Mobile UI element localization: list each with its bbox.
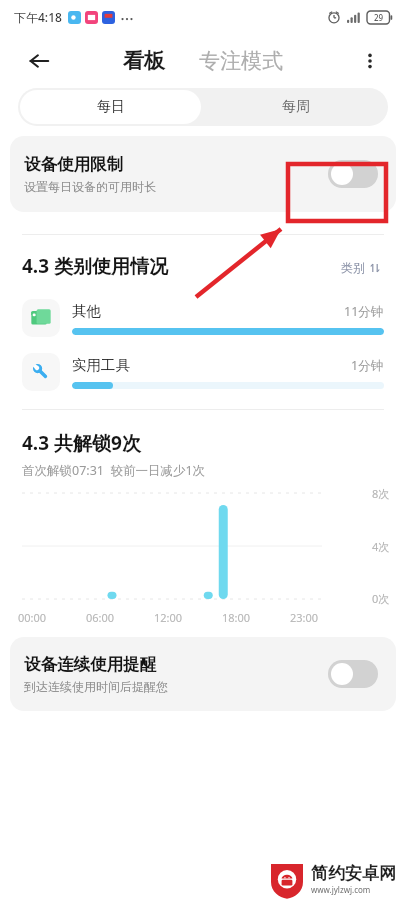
button[interactable]: 每周 [203,88,388,126]
staticText: 下午4:18 [14,9,62,25]
staticText: 23:00 [290,610,344,625]
button[interactable]: 开关 [328,160,378,188]
staticText: 12:00 [154,610,222,625]
staticText: 8次 [372,486,390,501]
staticText: 4次 [372,539,390,554]
staticText: 11分钟 [344,303,384,320]
staticText: 到达连续使用时间后提醒您 [24,679,168,694]
button[interactable]: 设备使用限制 [10,136,396,212]
button[interactable]: 其他 [0,295,406,341]
staticText: 专注模式 [199,48,283,74]
staticText: 29 [374,12,384,23]
button[interactable]: 返回 [18,40,60,82]
staticText: 每日 [97,98,125,116]
staticText: 06:00 [86,610,154,625]
staticText: 18:00 [222,610,290,625]
button[interactable]: 设备连续使用提醒 [10,637,396,711]
button[interactable]: 更多选项 [350,41,390,81]
button[interactable]: 类别 [337,256,384,279]
button[interactable]: 每日 [20,90,201,124]
staticText: 首次解锁07:31 较前一日减少1次 [22,462,206,479]
staticText: 设置每日设备的可用时长 [24,179,156,194]
button[interactable]: 专注模式 [193,44,289,78]
staticText: 1分钟 [351,357,384,374]
staticText: 看板 [123,48,165,74]
staticText: 设备使用限制 [24,154,123,175]
button[interactable]: 实用工具 [0,349,406,395]
staticText: 4.3 共解锁9次 [22,430,141,456]
staticText: 00:00 [18,610,86,625]
staticText: 其他 [72,302,101,320]
button[interactable]: 开关 [328,660,378,688]
button[interactable]: 看板 [117,44,171,78]
staticText: 设备连续使用提醒 [24,654,156,675]
staticText: 4.3 类别使用情况 [22,253,169,279]
staticText: www.jylzwj.com [311,884,371,895]
staticText: 0次 [372,591,390,606]
staticText: 实用工具 [72,356,130,374]
staticText: 简约安卓网 [311,863,396,884]
staticText: 类别 [341,260,365,275]
staticText: 每周 [282,98,310,116]
